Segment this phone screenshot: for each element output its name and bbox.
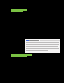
button[interactable] — [11, 54, 32, 57]
button[interactable] — [25, 39, 60, 53]
button[interactable] — [11, 9, 27, 12]
